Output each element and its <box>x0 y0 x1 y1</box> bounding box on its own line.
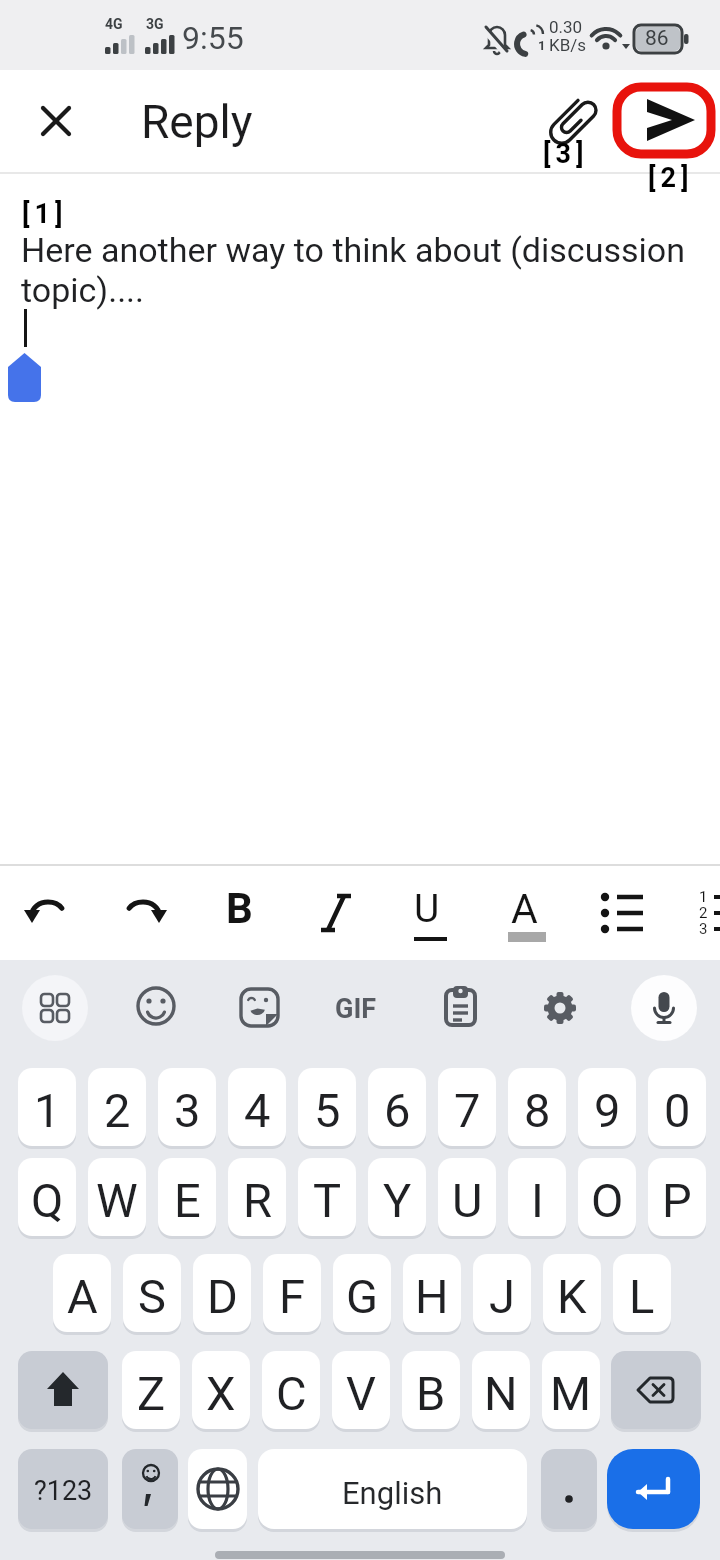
button[interactable]: M <box>542 1351 600 1429</box>
staticText: C <box>276 1366 307 1421</box>
button[interactable]: N <box>472 1351 530 1429</box>
button[interactable]: E <box>158 1158 216 1236</box>
button[interactable] <box>124 975 190 1041</box>
staticText: Here another way to think about (discuss… <box>21 230 685 310</box>
staticText: B <box>416 1366 446 1421</box>
staticText: [1] <box>22 198 68 230</box>
staticText: A <box>511 885 538 933</box>
staticText: M <box>550 1366 592 1421</box>
staticText: 4G <box>105 16 123 32</box>
staticText: 0.30 <box>549 17 583 37</box>
staticText: 0 <box>664 1083 691 1138</box>
staticText: 9 <box>594 1083 621 1138</box>
button[interactable] <box>225 975 291 1041</box>
button[interactable]: K <box>543 1254 601 1332</box>
button[interactable]: H <box>403 1254 461 1332</box>
button[interactable] <box>492 877 564 949</box>
button[interactable]: V <box>332 1351 390 1429</box>
button[interactable]: 9 <box>578 1068 636 1146</box>
button[interactable]: 8 <box>508 1068 566 1146</box>
button[interactable] <box>425 975 491 1041</box>
staticText: [3] <box>543 138 589 170</box>
staticText: G <box>346 1269 379 1324</box>
staticText: 8 <box>524 1083 551 1138</box>
staticText: Reply <box>141 95 253 149</box>
button[interactable] <box>607 1449 700 1529</box>
button[interactable]: F <box>263 1254 321 1332</box>
staticText: English <box>342 1475 443 1511</box>
staticText: T <box>313 1173 342 1228</box>
staticText: I <box>531 1173 544 1228</box>
button[interactable]: ?123 <box>18 1449 108 1529</box>
button[interactable]: B <box>402 1351 460 1429</box>
button[interactable]: W <box>88 1158 146 1236</box>
button[interactable] <box>22 975 88 1041</box>
staticText: H <box>415 1269 449 1324</box>
button[interactable] <box>611 1351 701 1429</box>
staticText: F <box>279 1269 305 1324</box>
button[interactable]: I <box>508 1158 566 1236</box>
button[interactable] <box>108 877 180 949</box>
button[interactable]: P <box>648 1158 706 1236</box>
button[interactable]: Y <box>368 1158 426 1236</box>
staticText: 86 <box>645 26 669 51</box>
button[interactable]: Z <box>122 1351 180 1429</box>
button[interactable]: G <box>333 1254 391 1332</box>
staticText: S <box>138 1269 166 1324</box>
staticText: X <box>206 1366 236 1421</box>
button[interactable]: C <box>262 1351 320 1429</box>
button[interactable] <box>188 1449 247 1529</box>
button[interactable]: 2 <box>88 1068 146 1146</box>
button[interactable]: X <box>192 1351 250 1429</box>
button[interactable] <box>548 98 596 146</box>
button[interactable]: 6 <box>368 1068 426 1146</box>
button[interactable] <box>631 975 697 1041</box>
staticText: Y <box>383 1173 412 1228</box>
button[interactable] <box>324 975 390 1041</box>
button[interactable]: 0 <box>648 1068 706 1146</box>
button[interactable] <box>684 877 720 949</box>
button[interactable]: L <box>613 1254 671 1332</box>
staticText: 7 <box>454 1083 481 1138</box>
button[interactable]: 7 <box>438 1068 496 1146</box>
button[interactable] <box>18 1351 108 1429</box>
button[interactable]: 3 <box>158 1068 216 1146</box>
button[interactable] <box>527 975 593 1041</box>
button[interactable]: A <box>53 1254 111 1332</box>
staticText: P <box>662 1173 692 1228</box>
button[interactable]: English <box>258 1449 527 1529</box>
button[interactable] <box>588 877 660 949</box>
button[interactable]: Q <box>18 1158 76 1236</box>
button[interactable] <box>300 877 372 949</box>
button[interactable]: D <box>193 1254 251 1332</box>
staticText: O <box>591 1173 624 1228</box>
staticText: U <box>414 886 440 932</box>
button[interactable] <box>12 877 84 949</box>
button[interactable]: 4 <box>228 1068 286 1146</box>
staticText: A <box>67 1269 98 1324</box>
button[interactable]: T <box>298 1158 356 1236</box>
button[interactable]: O <box>578 1158 636 1236</box>
button[interactable]: U <box>438 1158 496 1236</box>
button[interactable] <box>204 877 276 949</box>
staticText: D <box>207 1269 238 1324</box>
button[interactable]: 5 <box>298 1068 356 1146</box>
staticText: 2 <box>104 1083 131 1138</box>
button[interactable] <box>630 98 678 146</box>
button[interactable] <box>396 877 468 949</box>
staticText: [2] <box>648 162 694 194</box>
button[interactable] <box>122 1449 178 1529</box>
button[interactable]: J <box>473 1254 531 1332</box>
button[interactable]: 1 <box>18 1068 76 1146</box>
staticText: 9:55 <box>182 19 244 57</box>
staticText: W <box>96 1173 138 1228</box>
button[interactable] <box>541 1449 597 1529</box>
staticText: L <box>629 1269 655 1324</box>
staticText: 3 <box>699 920 708 938</box>
button[interactable]: S <box>123 1254 181 1332</box>
button[interactable] <box>32 97 80 145</box>
button[interactable]: R <box>228 1158 286 1236</box>
staticText: 4 <box>244 1083 271 1138</box>
staticText: KB/s <box>549 35 587 55</box>
staticText: K <box>557 1269 587 1324</box>
